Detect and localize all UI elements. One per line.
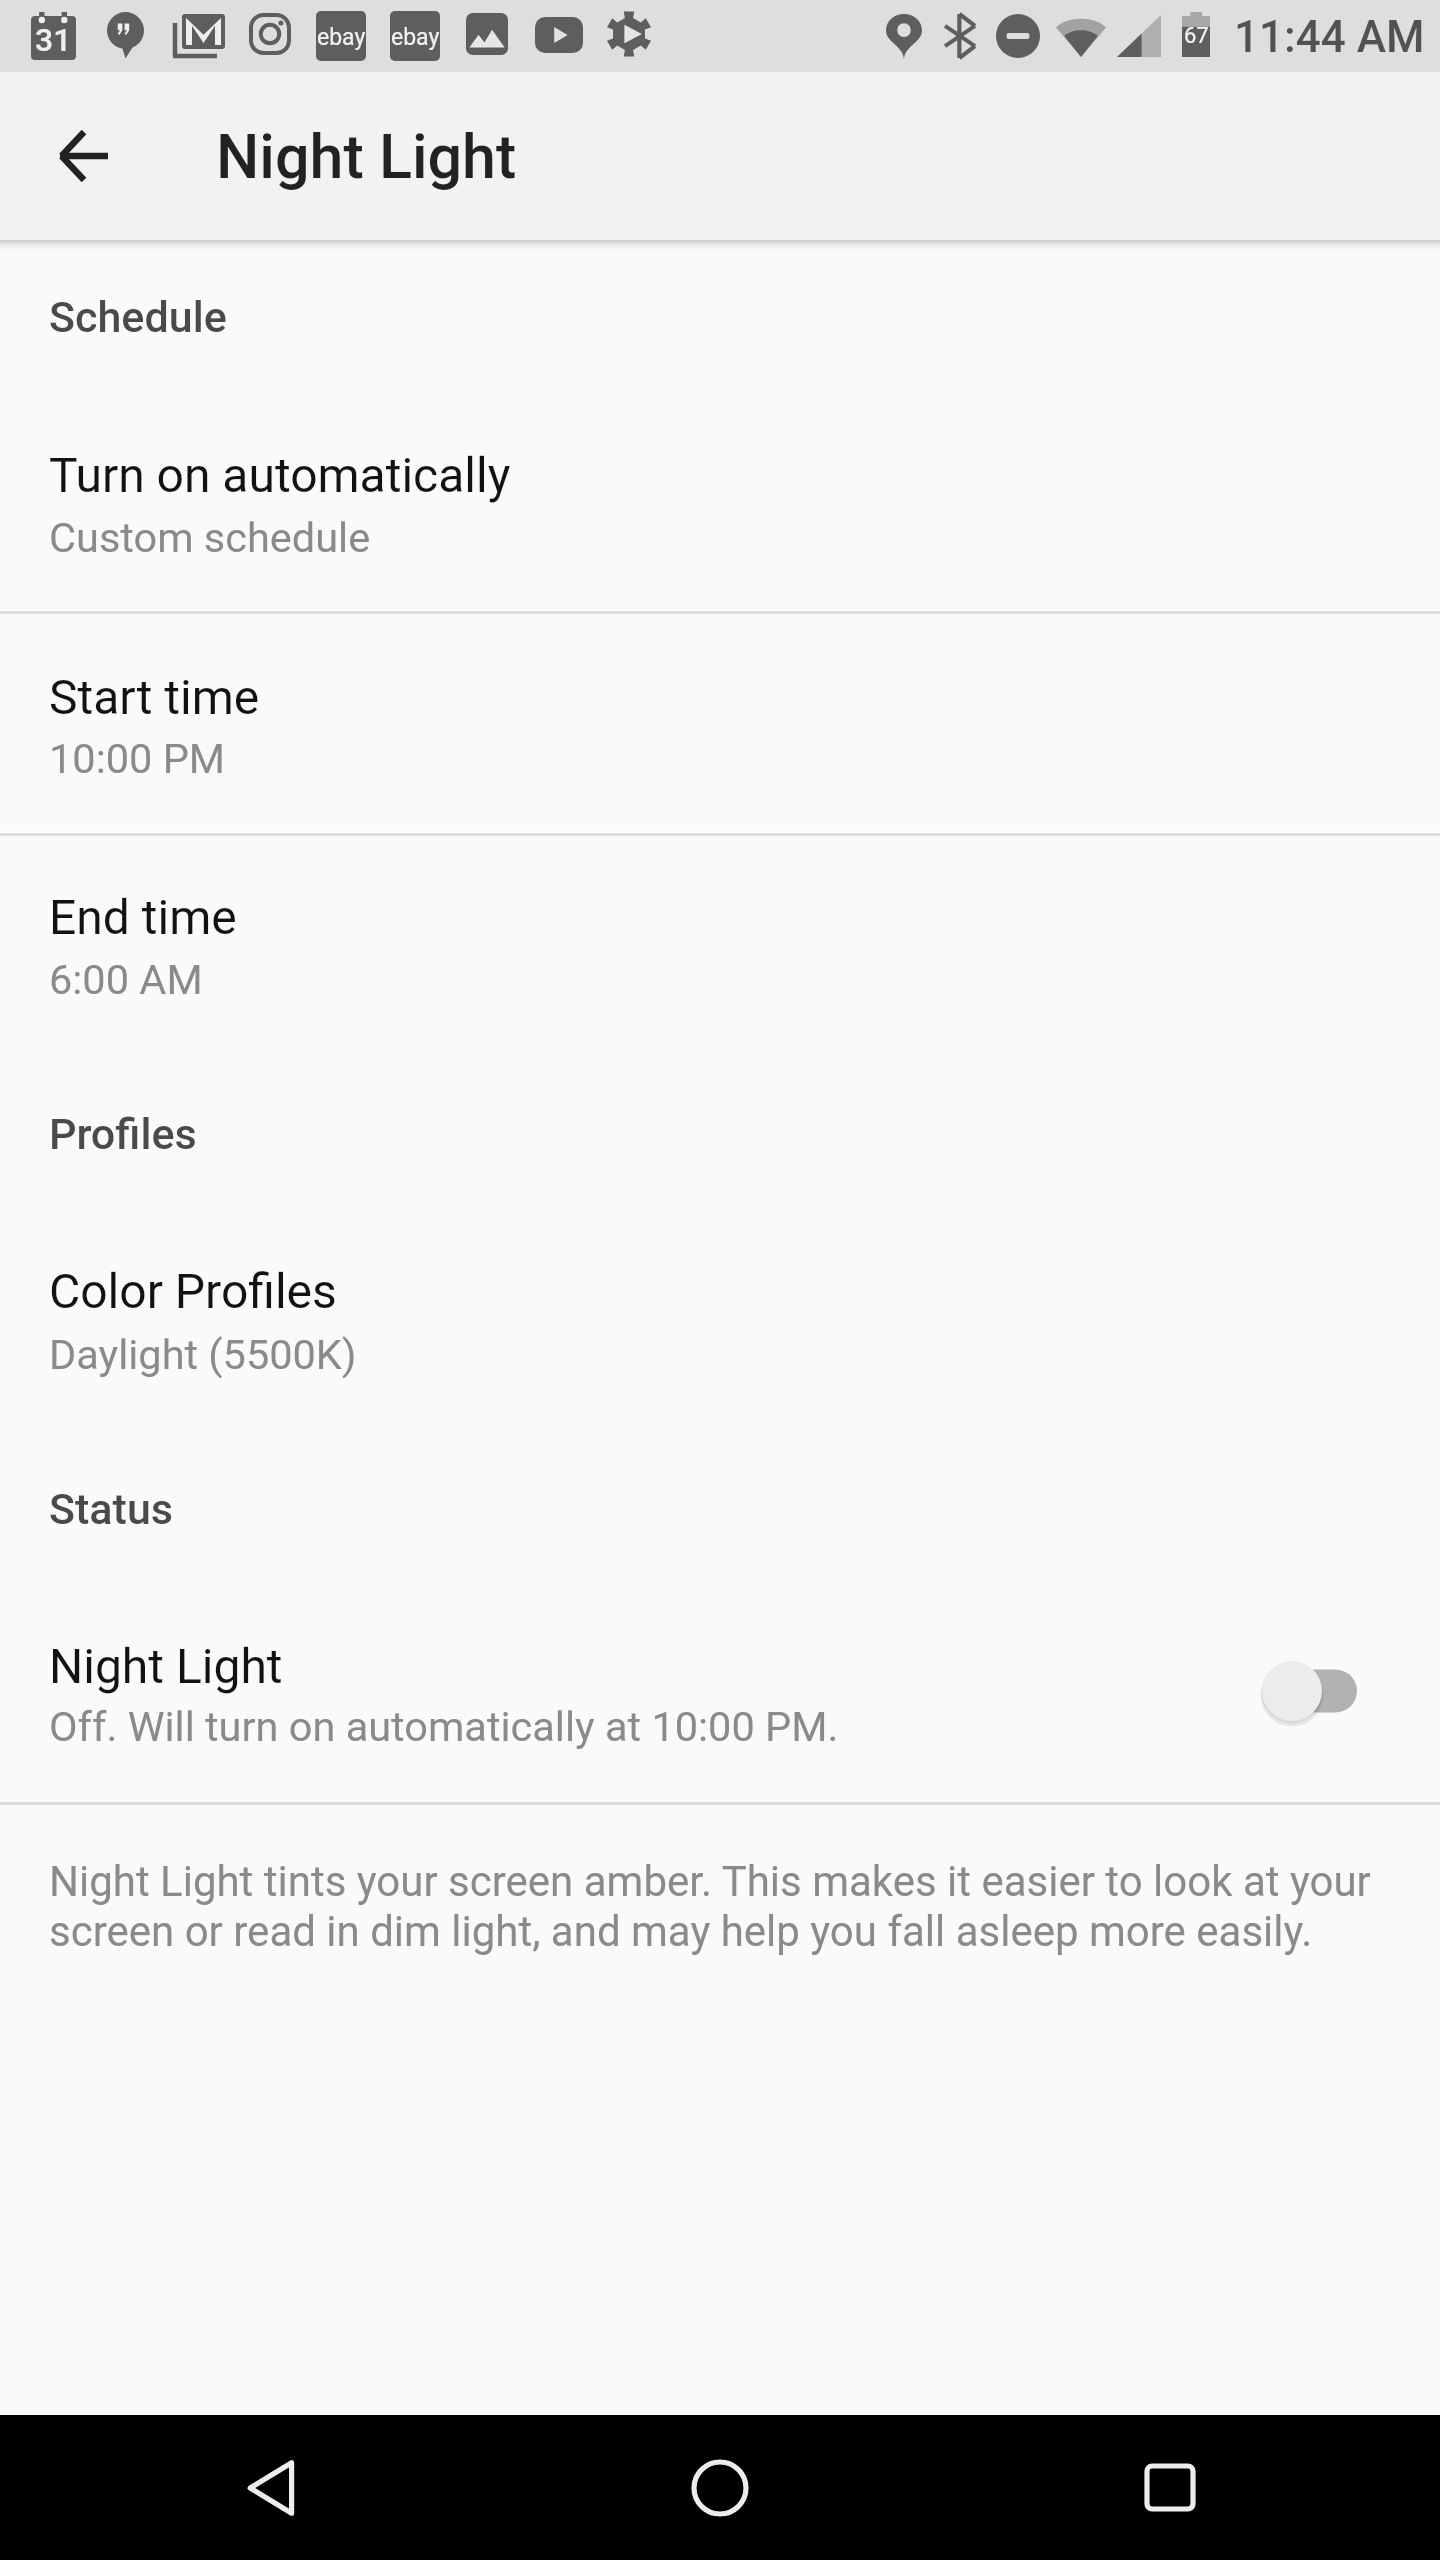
staticText: Turn on automatically [49, 447, 511, 503]
staticText: 11:44 AM [1234, 11, 1425, 63]
staticText: ebay [391, 24, 440, 51]
button[interactable]: Navigate up [36, 108, 132, 204]
button[interactable]: End time [0, 836, 1440, 1058]
staticText: Color Profiles [49, 1263, 337, 1319]
staticText: Night Light tints your screen amber. Thi… [49, 1857, 1389, 1956]
staticText: 31 [35, 21, 72, 59]
staticText: Start time [49, 669, 260, 725]
button[interactable]: Back [210, 2428, 330, 2548]
staticText: Off. Will turn on automatically at 10:00… [49, 1702, 839, 1751]
button[interactable]: Night Light toggle, off [1255, 1655, 1370, 1727]
staticText: Custom schedule [49, 513, 371, 562]
button[interactable]: Color Profiles [0, 1213, 1440, 1432]
staticText: 10:00 PM [49, 734, 226, 783]
button[interactable]: Recent apps [1110, 2428, 1230, 2548]
button[interactable]: Turn on automatically [0, 394, 1440, 610]
button[interactable]: Home [660, 2428, 780, 2548]
staticText: Schedule [49, 292, 227, 342]
staticText: 6:00 AM [49, 955, 203, 1004]
staticText: Profiles [49, 1109, 197, 1159]
button[interactable]: Night Light [0, 1588, 1440, 1801]
button[interactable]: Start time [0, 614, 1440, 832]
staticText: Daylight (5500K) [49, 1330, 357, 1379]
staticText: ebay [317, 24, 366, 51]
staticText: Night Light [49, 1638, 283, 1694]
staticText: Status [49, 1484, 174, 1534]
staticText: Night Light [216, 121, 517, 192]
staticText: 67 [1184, 23, 1209, 49]
staticText: End time [49, 889, 237, 945]
